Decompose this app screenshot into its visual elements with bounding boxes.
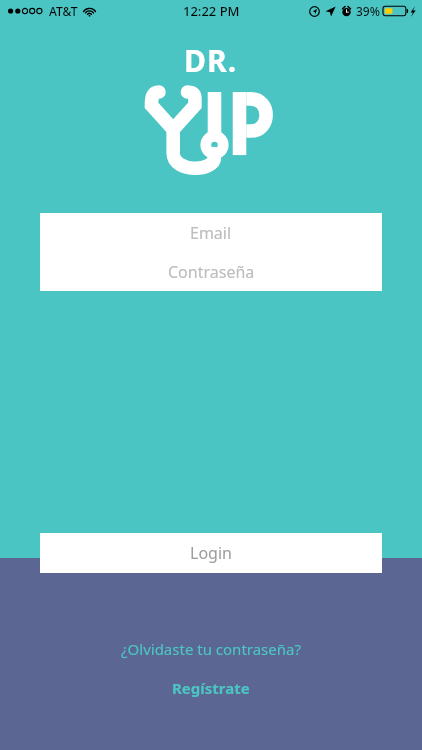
button[interactable]: Regístrate bbox=[162, 675, 260, 701]
button[interactable]: Email bbox=[40, 213, 382, 252]
button[interactable]: Contraseña bbox=[40, 252, 382, 291]
staticText: DR. bbox=[184, 40, 238, 81]
staticText: Login bbox=[190, 542, 232, 564]
staticText: Email bbox=[190, 222, 232, 244]
button[interactable]: ¿Olvidaste tu contraseña? bbox=[111, 636, 311, 662]
staticText: Contraseña bbox=[168, 261, 255, 283]
staticText: Regístrate bbox=[172, 678, 250, 698]
staticText: AT&T bbox=[49, 3, 78, 19]
button[interactable]: Login bbox=[40, 533, 382, 573]
staticText: 39% bbox=[356, 3, 380, 19]
staticText: ¿Olvidaste tu contraseña? bbox=[121, 639, 301, 659]
staticText: 12:22 PM bbox=[183, 2, 240, 20]
